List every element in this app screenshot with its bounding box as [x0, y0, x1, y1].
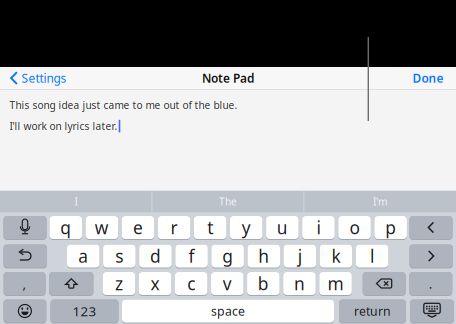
staticText: u: [277, 216, 288, 239]
button[interactable]: c: [175, 272, 207, 295]
staticText: j: [298, 244, 302, 268]
button[interactable]: b: [247, 272, 280, 295]
staticText: k: [331, 244, 340, 268]
button[interactable]: e: [122, 216, 154, 239]
button[interactable]: y: [230, 216, 262, 239]
button[interactable]: Settings: [6, 67, 69, 89]
staticText: g: [222, 244, 233, 268]
staticText: 123: [72, 302, 96, 320]
button[interactable]: Period: [409, 272, 452, 295]
button[interactable]: Done: [406, 67, 449, 89]
staticText: i: [316, 216, 320, 239]
button[interactable]: I'm: [304, 191, 456, 212]
staticText: p: [385, 216, 396, 239]
button[interactable]: Hide Keyboard: [410, 299, 454, 322]
staticText: r: [171, 216, 178, 239]
staticText: w: [95, 216, 109, 239]
button[interactable]: Dictate: [3, 216, 46, 239]
staticText: s: [115, 244, 123, 268]
button[interactable]: f: [175, 244, 208, 267]
staticText: b: [258, 272, 269, 295]
staticText: e: [133, 216, 143, 239]
staticText: Note Pad: [202, 70, 254, 86]
staticText: o: [350, 216, 360, 239]
staticText: Settings: [21, 70, 66, 86]
button[interactable]: Undo: [3, 244, 47, 267]
button[interactable]: v: [211, 272, 243, 295]
staticText: q: [60, 216, 71, 239]
staticText: This song idea just came to me out of th…: [9, 98, 237, 112]
button[interactable]: space: [122, 299, 334, 322]
button[interactable]: x: [139, 272, 171, 295]
button[interactable]: Emoji: [3, 299, 46, 322]
button[interactable]: r: [158, 216, 190, 239]
button[interactable]: k: [320, 244, 352, 267]
button[interactable]: The: [152, 191, 304, 212]
button[interactable]: u: [266, 216, 299, 239]
button[interactable]: t: [194, 216, 226, 239]
button[interactable]: n: [283, 272, 316, 295]
button[interactable]: i: [302, 216, 335, 239]
button[interactable]: j: [284, 244, 316, 267]
button[interactable]: o: [338, 216, 371, 239]
staticText: z: [115, 272, 123, 295]
staticText: v: [223, 272, 232, 295]
button[interactable]: Delete: [363, 272, 406, 295]
button[interactable]: g: [211, 244, 244, 267]
staticText: y: [242, 216, 251, 239]
staticText: .: [429, 274, 433, 293]
button[interactable]: z: [103, 272, 135, 295]
button[interactable]: h: [247, 244, 280, 267]
button[interactable]: Comma: [4, 272, 46, 295]
button[interactable]: m: [319, 272, 352, 295]
staticText: d: [150, 244, 161, 268]
button[interactable]: l: [356, 244, 388, 267]
staticText: l: [370, 244, 374, 268]
staticText: f: [189, 244, 195, 268]
button[interactable]: d: [139, 244, 172, 267]
button[interactable]: w: [86, 216, 118, 239]
staticText: m: [328, 272, 344, 295]
staticText: return: [354, 303, 391, 319]
button[interactable]: Previous: [409, 216, 452, 239]
staticText: x: [151, 272, 160, 295]
button[interactable]: Next: [409, 244, 453, 267]
staticText: ,: [23, 274, 27, 293]
button[interactable]: p: [374, 216, 407, 239]
staticText: h: [258, 244, 269, 268]
staticText: The: [219, 195, 237, 208]
staticText: I'm: [373, 195, 387, 208]
button[interactable]: s: [103, 244, 136, 267]
staticText: space: [211, 303, 245, 319]
staticText: n: [294, 272, 305, 295]
button[interactable]: a: [67, 244, 99, 267]
button[interactable]: return: [339, 299, 406, 322]
staticText: Done: [412, 70, 443, 86]
staticText: c: [187, 272, 195, 295]
button[interactable]: q: [49, 216, 82, 239]
staticText: t: [207, 216, 213, 239]
staticText: I: [74, 195, 77, 208]
button[interactable]: Shift: [49, 272, 93, 295]
button[interactable]: Numbers: [50, 299, 118, 322]
staticText: a: [78, 244, 88, 268]
staticText: I'll work on lyrics later.: [9, 119, 117, 133]
